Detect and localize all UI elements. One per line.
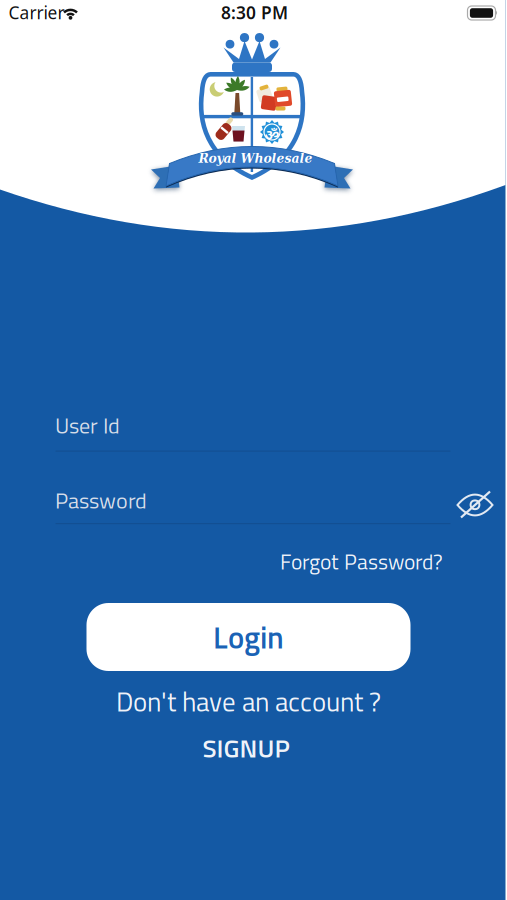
staticText: Forgot Password? (280, 545, 443, 578)
button[interactable]: SIGNUP (202, 728, 289, 767)
staticText: Login (213, 614, 284, 660)
staticText: SIGNUP (202, 728, 289, 767)
button[interactable]: Show password (455, 488, 495, 522)
staticText: Don't have an account ? (116, 681, 381, 722)
staticText: 8:30 PM (221, 1, 288, 24)
staticText: User Id (55, 408, 120, 442)
staticText: Password (55, 483, 147, 517)
staticText: Carrier (8, 1, 64, 24)
staticText: ॐ (264, 124, 279, 144)
staticText: Royal Wholesale (198, 151, 312, 166)
button[interactable]: Login (86, 603, 410, 671)
button[interactable]: Forgot Password? (280, 545, 443, 578)
